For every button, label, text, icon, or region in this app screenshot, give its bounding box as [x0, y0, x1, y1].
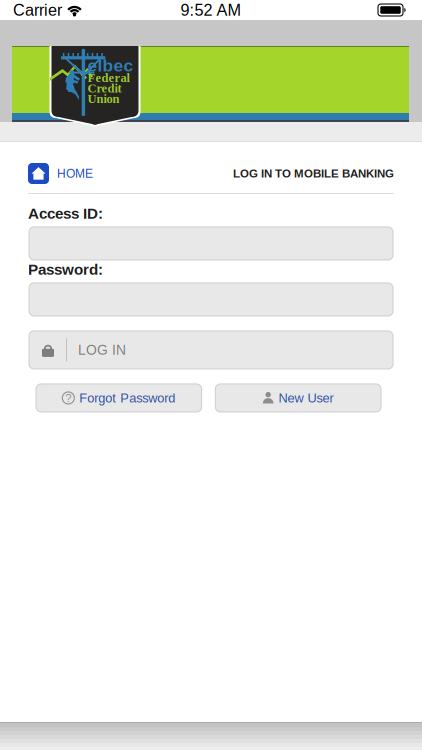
staticText: Forgot Password: [79, 391, 175, 405]
button[interactable]: LOG IN: [29, 331, 393, 369]
staticText: ?: [65, 392, 71, 404]
staticText: Federal: [87, 71, 129, 85]
staticText: LOG IN: [78, 342, 126, 358]
button[interactable]: ?: [36, 384, 202, 412]
button[interactable]: New User: [215, 384, 381, 412]
staticText: LOG IN TO MOBILE BANKING: [233, 167, 394, 180]
staticText: 9:52 AM: [180, 1, 241, 19]
button[interactable]: HOME: [28, 163, 93, 184]
staticText: Carrier: [13, 1, 62, 19]
staticText: HOME: [57, 167, 93, 180]
staticText: elbec: [87, 56, 133, 75]
staticText: Access ID:: [28, 205, 103, 222]
staticText: New User: [278, 391, 333, 405]
staticText: Credit: [87, 81, 121, 95]
staticText: Password:: [28, 261, 103, 278]
staticText: Union: [87, 92, 119, 106]
